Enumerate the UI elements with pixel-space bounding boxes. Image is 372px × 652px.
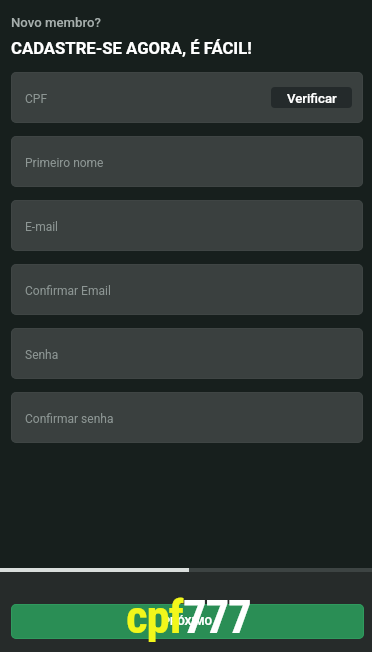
staticText: CADASTRE-SE AGORA, É FÁCIL! bbox=[11, 39, 252, 59]
staticText: Verificar bbox=[287, 91, 337, 106]
button[interactable]: Senha bbox=[11, 328, 363, 379]
button[interactable]: Confirmar Email bbox=[11, 264, 363, 315]
staticText: Senha bbox=[25, 348, 59, 362]
button[interactable]: Verificar bbox=[271, 87, 352, 108]
staticText: 777 bbox=[183, 589, 251, 644]
staticText: CPF bbox=[25, 92, 48, 106]
button[interactable]: Primeiro nome bbox=[11, 136, 363, 187]
staticText: PRÓXIMO bbox=[163, 615, 213, 628]
staticText: Confirmar Email bbox=[25, 284, 111, 298]
staticText: cpf bbox=[126, 589, 183, 644]
staticText: E-mail bbox=[25, 220, 59, 234]
button[interactable]: E-mail bbox=[11, 200, 363, 251]
other: Progresso do cadastro bbox=[0, 568, 372, 572]
button[interactable]: CPF bbox=[11, 72, 363, 123]
button[interactable]: Confirmar senha bbox=[11, 392, 363, 443]
staticText: Confirmar senha bbox=[25, 412, 114, 426]
staticText: Novo membro? bbox=[11, 15, 101, 30]
staticText: Primeiro nome bbox=[25, 156, 104, 170]
button[interactable]: PRÓXIMO bbox=[11, 604, 364, 639]
